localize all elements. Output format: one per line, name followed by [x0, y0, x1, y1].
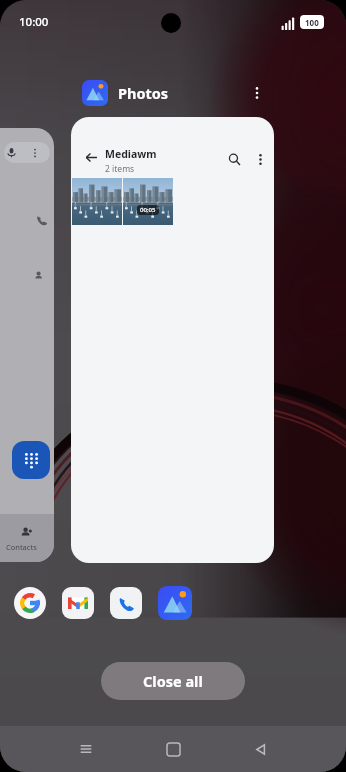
staticText: Mediawm: [105, 147, 157, 161]
button[interactable]: Video: [123, 178, 173, 225]
button[interactable]: Gmail: [62, 587, 94, 619]
button[interactable]: Google: [14, 587, 46, 619]
button[interactable]: Back: [249, 738, 271, 760]
button[interactable]: Dialpad: [12, 441, 50, 479]
button[interactable]: Photos: [158, 586, 192, 620]
staticText: 10:00: [19, 14, 49, 30]
button[interactable]: Home: [162, 738, 184, 760]
button[interactable]: Phone: [110, 587, 142, 619]
button[interactable]: More options: [246, 82, 268, 104]
staticText: Photos: [118, 83, 169, 103]
staticText: Contacts: [6, 542, 37, 552]
button[interactable]: Photo: [72, 178, 122, 225]
button[interactable]: Search: [223, 148, 245, 170]
staticText: 100: [305, 17, 319, 28]
button[interactable]: Back: [71, 117, 274, 563]
button[interactable]: Back: [81, 147, 101, 167]
staticText: 00:05: [140, 206, 156, 214]
button[interactable]: Close all: [101, 662, 245, 700]
staticText: Close all: [143, 671, 203, 691]
button[interactable]: Recent apps: [75, 738, 97, 760]
button[interactable]: More options: [249, 148, 271, 170]
button[interactable]: Dialpad: [0, 128, 54, 562]
staticText: 2 items: [105, 163, 135, 175]
